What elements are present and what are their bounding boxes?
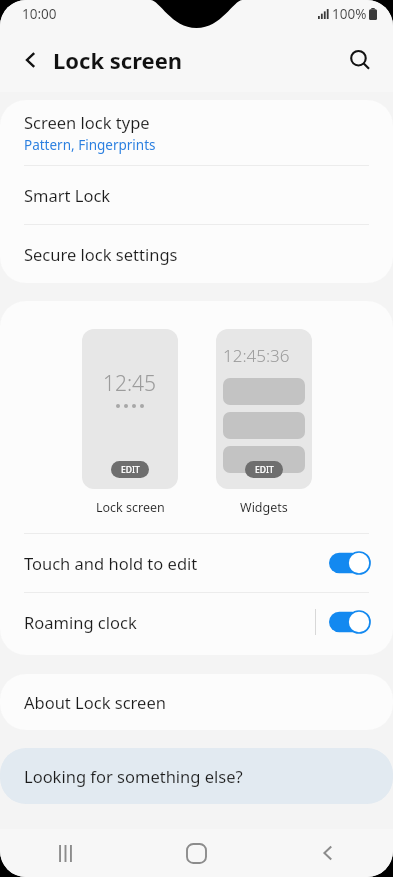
- button[interactable]: Back: [9, 38, 53, 82]
- button[interactable]: Looking for something else?: [0, 748, 393, 804]
- button[interactable]: About Lock screen: [0, 674, 393, 730]
- staticText: EDIT: [121, 464, 140, 476]
- staticText: Lock screen: [53, 45, 183, 75]
- staticText: Pattern, Fingerprints: [24, 136, 156, 154]
- button[interactable]: Secure lock settings: [0, 225, 393, 283]
- button[interactable]: EDIT: [245, 461, 283, 478]
- staticText: 12:45:36: [223, 344, 290, 367]
- button[interactable]: Recents: [0, 829, 131, 877]
- button[interactable]: EDIT: [111, 461, 149, 478]
- button[interactable]: Lock screen: [82, 329, 178, 489]
- button[interactable]: Touch and hold to edit toggle: [329, 551, 371, 575]
- staticText: About Lock screen: [24, 691, 166, 713]
- button[interactable]: Touch and hold to edit: [0, 534, 393, 592]
- staticText: Screen lock type: [24, 111, 150, 133]
- staticText: Widgets: [240, 499, 288, 516]
- staticText: Touch and hold to edit: [24, 552, 329, 574]
- button[interactable]: Back: [262, 829, 393, 877]
- staticText: Smart Lock: [24, 184, 111, 206]
- button[interactable]: Search: [338, 38, 382, 82]
- button[interactable]: Screen lock type: [0, 100, 393, 165]
- staticText: 10:00: [22, 5, 57, 23]
- button[interactable]: Smart Lock: [0, 166, 393, 224]
- button[interactable]: Roaming clock toggle: [329, 610, 371, 634]
- staticText: Roaming clock: [24, 611, 315, 633]
- staticText: Secure lock settings: [24, 243, 178, 265]
- button[interactable]: Home: [131, 829, 262, 877]
- staticText: Lock screen: [96, 499, 165, 516]
- staticText: EDIT: [255, 464, 274, 476]
- staticText: 12:45: [103, 369, 157, 398]
- button[interactable]: Widgets: [216, 329, 312, 489]
- staticText: Looking for something else?: [24, 765, 243, 787]
- button[interactable]: Roaming clock: [0, 593, 393, 651]
- staticText: 100%: [332, 5, 367, 23]
